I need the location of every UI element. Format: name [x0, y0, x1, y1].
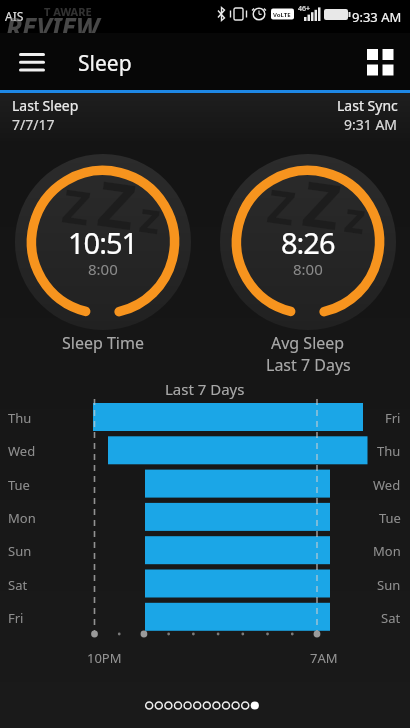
staticText: Sat	[8, 576, 28, 594]
staticText: REVIEW	[6, 9, 99, 44]
staticText: z	[136, 187, 165, 246]
staticText: Z	[264, 173, 299, 239]
staticText: Mon	[373, 542, 401, 560]
staticText: Fri	[8, 609, 24, 627]
staticText: 46+	[298, 4, 311, 14]
staticText: Sleep	[78, 49, 132, 78]
staticText: Mon	[8, 509, 36, 527]
staticText: Thu	[377, 442, 401, 460]
staticText: Last 7 Days	[266, 354, 351, 376]
staticText: Z	[59, 173, 94, 239]
button[interactable]: Z	[220, 154, 396, 330]
staticText: Last 7 Days	[165, 379, 245, 399]
staticText: Avg Sleep	[271, 332, 345, 354]
staticText: Tue	[8, 476, 30, 494]
staticText: 9:33 AM	[352, 8, 402, 26]
staticText: 9:31 AM	[344, 115, 398, 134]
staticText: T AWARE	[44, 4, 92, 19]
staticText: Sleep Time	[62, 332, 144, 354]
staticText: Sun	[377, 576, 401, 594]
staticText: Wed	[373, 476, 401, 494]
staticText: Thu	[8, 409, 32, 427]
staticText: z	[341, 187, 370, 246]
staticText: 8:00	[293, 259, 323, 279]
staticText: 10:51	[68, 223, 138, 262]
button[interactable]: Z	[15, 154, 191, 330]
staticText: VoLTE	[273, 11, 291, 19]
staticText: Z	[93, 160, 141, 248]
staticText: 7AM	[310, 649, 338, 667]
staticText: 8:26	[281, 223, 335, 262]
staticText: Fri	[385, 409, 401, 427]
staticText: Sun	[8, 542, 32, 560]
staticText: Z	[298, 160, 346, 248]
staticText: 7/7/17	[12, 115, 55, 134]
staticText: Wed	[8, 442, 36, 460]
button[interactable]	[10, 44, 54, 80]
button[interactable]	[0, 694, 410, 718]
button[interactable]	[358, 44, 402, 80]
staticText: Last Sleep	[12, 96, 79, 115]
staticText: AIS	[5, 8, 24, 24]
staticText: 10PM	[87, 649, 122, 667]
staticText: 8:00	[88, 259, 118, 279]
staticText: Last Sync	[337, 96, 398, 115]
staticText: Sat	[381, 609, 401, 627]
staticText: Tue	[379, 509, 401, 527]
